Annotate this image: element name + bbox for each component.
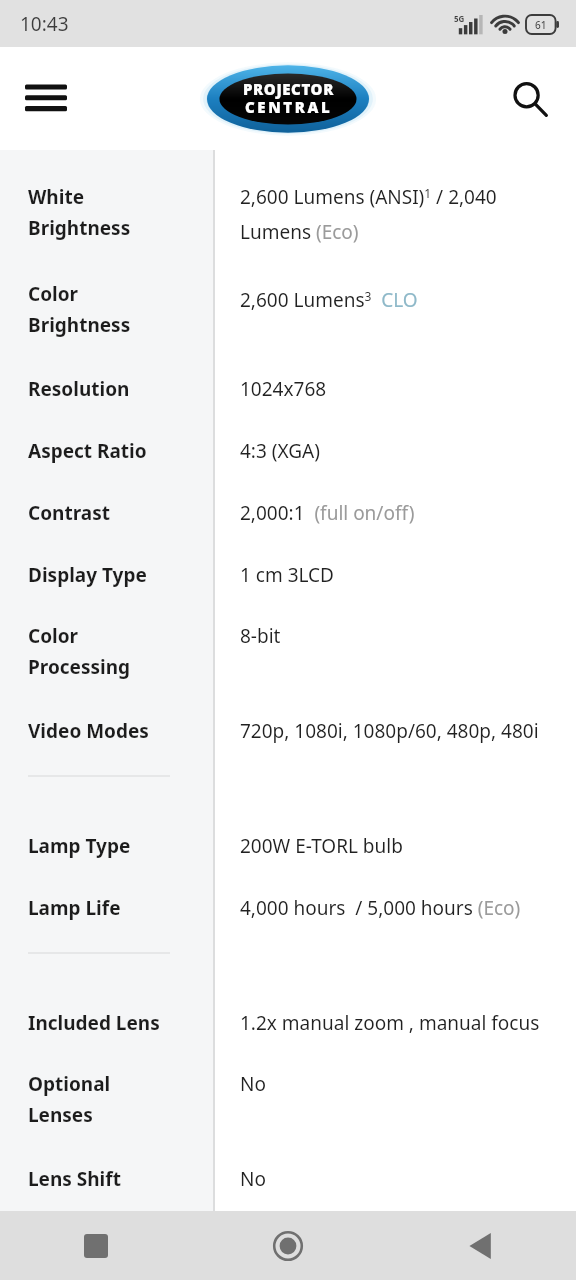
staticText: 61 (535, 18, 547, 32)
staticText: 1 cm 3LCD (240, 562, 334, 588)
staticText: Included Lens (28, 1010, 160, 1036)
button[interactable]: Recents (0, 1211, 192, 1280)
staticText: Lens Shift (28, 1166, 121, 1192)
staticText: 720p, 1080i, 1080p/60, 480p, 480i (240, 718, 539, 744)
button[interactable]: Lamp Life (28, 895, 205, 921)
staticText: 2,600 Lumens3 CLO (240, 287, 418, 313)
staticText: White Brightness (28, 184, 131, 241)
staticText: 1.2x manual zoom , manual focus (240, 1010, 540, 1036)
staticText: 8-bit (240, 623, 281, 649)
button[interactable]: Display Type (28, 562, 205, 588)
button[interactable]: Search (496, 65, 564, 133)
staticText: Lamp Life (28, 895, 121, 921)
button[interactable]: Projector Central home (199, 62, 377, 136)
staticText: Lamp Type (28, 833, 131, 859)
staticText: 2,000:1 (full on/off) (240, 500, 415, 526)
button[interactable]: Lamp Type (28, 833, 205, 859)
staticText: No (240, 1071, 266, 1097)
staticText: PROJECTOR (243, 79, 334, 99)
button[interactable]: Home (192, 1211, 384, 1280)
staticText: 2,600 Lumens (ANSI)1 / 2,040 Lumens (Eco… (240, 184, 560, 244)
button[interactable]: Menu (12, 65, 80, 133)
button[interactable]: Optional Lenses (28, 1071, 205, 1128)
staticText: 10:43 (20, 11, 69, 37)
button[interactable]: Resolution (28, 376, 205, 402)
staticText: Color Processing (28, 623, 131, 680)
staticText: 5G (454, 13, 465, 24)
button[interactable]: Video Modes (28, 718, 205, 744)
staticText: Video Modes (28, 718, 149, 744)
button[interactable]: Contrast (28, 500, 205, 526)
staticText: Aspect Ratio (28, 438, 147, 464)
button[interactable]: Lens Shift (28, 1166, 205, 1192)
staticText: 1024x768 (240, 376, 327, 402)
staticText: Color Brightness (28, 281, 131, 338)
button[interactable]: White Brightness (28, 184, 205, 241)
button[interactable]: Back (384, 1211, 576, 1280)
button[interactable]: Color Brightness (28, 281, 205, 338)
staticText: No (240, 1166, 266, 1192)
staticText: CENTRAL (245, 97, 333, 117)
staticText: Contrast (28, 500, 110, 526)
button[interactable]: Included Lens (28, 1010, 205, 1036)
staticText: 4,000 hours / 5,000 hours (Eco) (240, 895, 521, 921)
button[interactable]: Color Processing (28, 623, 205, 680)
staticText: Optional Lenses (28, 1071, 111, 1128)
staticText: 4:3 (XGA) (240, 438, 320, 464)
staticText: Resolution (28, 376, 130, 402)
staticText: 200W E-TORL bulb (240, 833, 403, 859)
staticText: Display Type (28, 562, 147, 588)
button[interactable]: Aspect Ratio (28, 438, 205, 464)
